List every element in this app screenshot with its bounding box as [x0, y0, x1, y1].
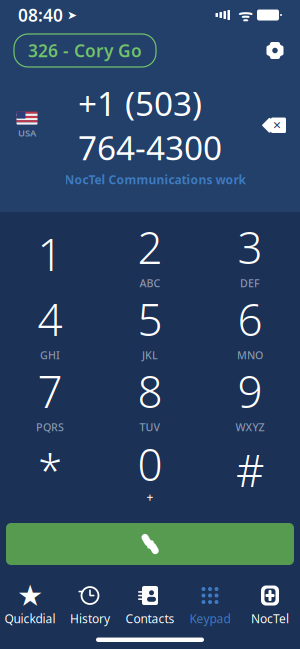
button[interactable]: 8	[100, 362, 200, 434]
button[interactable]: 5	[100, 290, 200, 362]
staticText: History	[70, 610, 110, 626]
staticText: *	[38, 441, 62, 499]
staticText: Keypad	[189, 610, 230, 626]
button[interactable]: Delete	[256, 112, 290, 138]
staticText: 0	[137, 435, 162, 493]
staticText: DEF	[240, 276, 260, 290]
button[interactable]: ★	[0, 584, 60, 626]
staticText: Contacts	[125, 610, 174, 626]
staticText: NocTel Communications work	[64, 171, 245, 187]
button[interactable]: 326 - Cory Go	[14, 34, 156, 67]
staticText: #	[236, 441, 264, 499]
staticText: 1	[37, 225, 62, 283]
button[interactable]: Contacts	[120, 584, 180, 626]
staticText: 2	[137, 218, 162, 276]
button[interactable]: 0	[100, 434, 200, 506]
staticText: 8	[137, 362, 162, 420]
button[interactable]: *	[0, 434, 100, 506]
staticText: WXYZ	[235, 420, 264, 434]
staticText: 08:40	[18, 3, 63, 26]
button[interactable]: 1	[0, 218, 100, 290]
button[interactable]: NocTel	[240, 584, 300, 626]
button[interactable]: History	[60, 584, 120, 626]
staticText: USA	[18, 127, 36, 139]
staticText: MNO	[237, 348, 263, 362]
staticText: Quickdial	[4, 610, 55, 626]
staticText: 6	[237, 290, 262, 348]
staticText: 3	[237, 218, 262, 276]
staticText: GHI	[40, 348, 60, 362]
staticText: 326 - Cory Go	[28, 39, 142, 62]
staticText: 5	[137, 290, 162, 348]
staticText: ★	[17, 579, 43, 612]
button[interactable]: 7	[0, 362, 100, 434]
staticText: TUV	[139, 420, 160, 434]
staticText: NocTel	[251, 610, 289, 626]
button[interactable]: 6	[200, 290, 300, 362]
button[interactable]: Settings	[258, 35, 292, 65]
staticText: ✕	[272, 119, 281, 131]
staticText: PQRS	[36, 420, 64, 434]
staticText: ᯤ	[230, 4, 253, 26]
button[interactable]: 9	[200, 362, 300, 434]
staticText: +	[146, 489, 153, 505]
staticText: ➤	[63, 8, 77, 22]
button[interactable]: 4	[0, 290, 100, 362]
button[interactable]: Keypad	[180, 584, 240, 626]
button[interactable]: 2	[100, 218, 200, 290]
staticText: 9	[237, 362, 262, 420]
staticText: JKL	[142, 348, 158, 362]
staticText: 7	[37, 362, 62, 420]
staticText: 4	[37, 290, 62, 348]
button[interactable]: #	[200, 434, 300, 506]
staticText: ABC	[139, 276, 160, 290]
button[interactable]: Call	[0, 512, 300, 576]
button[interactable]: 3	[200, 218, 300, 290]
staticText: +1 (503) 764-4300	[78, 81, 222, 169]
